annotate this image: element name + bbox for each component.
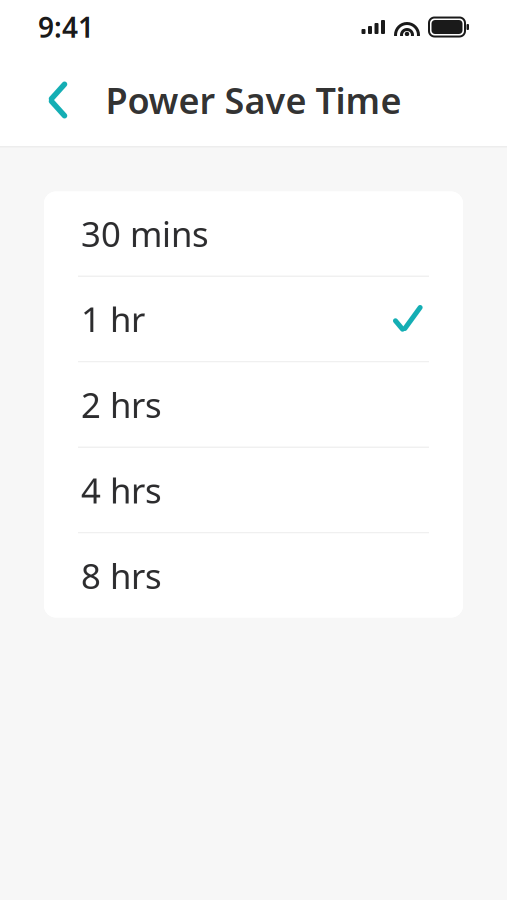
staticText: 2 hrs	[81, 381, 162, 427]
staticText: 30 mins	[81, 210, 209, 256]
staticText: Power Save Time	[105, 76, 401, 124]
staticText: 4 hrs	[81, 467, 162, 513]
button[interactable]: 4 hrs	[44, 448, 463, 532]
button[interactable]: 30 mins	[44, 191, 463, 275]
button[interactable]: Back	[28, 66, 88, 134]
staticText: 1 hr	[81, 296, 145, 342]
staticText: 8 hrs	[81, 552, 162, 598]
button[interactable]: 8 hrs	[44, 533, 463, 617]
staticText: 9:41	[38, 8, 94, 46]
button[interactable]: 2 hrs	[44, 362, 463, 446]
button[interactable]: 1 hr	[44, 277, 463, 361]
